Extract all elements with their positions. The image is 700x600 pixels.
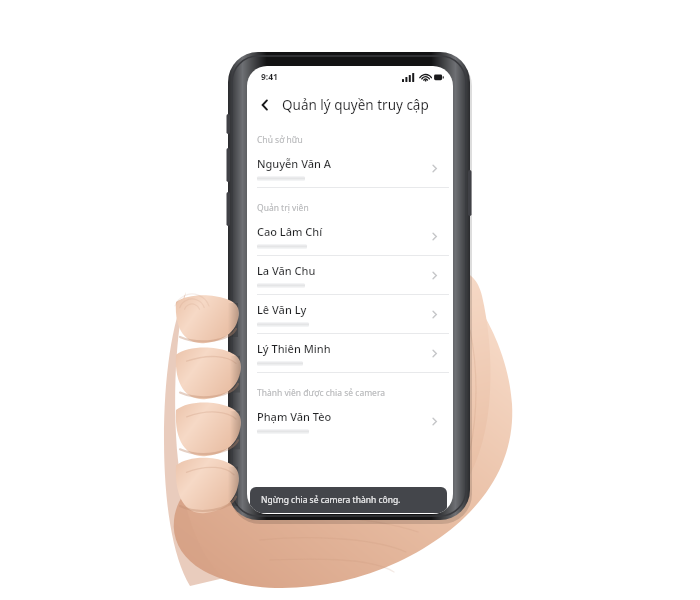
staticText: Phạm Văn Tèo [257, 409, 332, 424]
other: Xem chi tiết Lê Văn Ly [426, 306, 442, 322]
staticText: Lê Văn Ly [257, 302, 307, 317]
staticText: Cao Lâm Chí [257, 224, 323, 239]
staticText: Nguyễn Văn A [257, 156, 331, 171]
button[interactable]: Lê Văn Ly [247, 295, 453, 333]
other: Xem chi tiết Cao Lâm Chí [426, 228, 442, 244]
button[interactable]: Ngừng chia sẻ camera thành công. [250, 487, 447, 513]
staticText: La Văn Chu [257, 263, 316, 278]
staticText: Quản lý quyền truy cập [282, 96, 429, 114]
other: Xem chi tiết Lý Thiên Minh [426, 345, 442, 361]
staticText: Lý Thiên Minh [257, 341, 331, 356]
staticText: Chủ sở hữu [257, 134, 303, 146]
staticText: 9:41 [261, 71, 278, 83]
button[interactable]: Back [252, 92, 278, 118]
staticText: Thành viên được chia sẻ camera [257, 387, 386, 399]
button[interactable]: La Văn Chu [247, 256, 453, 294]
staticText: Quản trị viên [257, 202, 309, 214]
other: Xem chi tiết La Văn Chu [426, 267, 442, 283]
other: Xem chi tiết Nguyễn Văn A [426, 160, 442, 176]
staticText: Ngừng chia sẻ camera thành công. [261, 494, 401, 506]
button[interactable]: Lý Thiên Minh [247, 334, 453, 372]
button[interactable]: Cao Lâm Chí [247, 217, 453, 255]
other: Xem chi tiết Phạm Văn Tèo [426, 413, 442, 429]
button[interactable]: Nguyễn Văn A [247, 149, 453, 187]
button[interactable]: Phạm Văn Tèo [247, 402, 453, 440]
